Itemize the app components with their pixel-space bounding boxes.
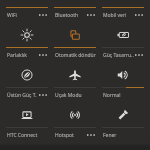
staticText: Bluetooth [55, 12, 79, 19]
button[interactable]: Normal [102, 87, 144, 127]
button[interactable]: Otomatik döndür [54, 47, 96, 87]
staticText: Mobil veri [103, 12, 127, 19]
staticText: WiFi [7, 12, 17, 19]
staticText: Parlaklık [7, 52, 27, 59]
staticText: Normal [103, 92, 121, 99]
button[interactable]: WiFi [6, 7, 48, 47]
staticText: Hotspot [55, 132, 74, 139]
button[interactable]: Uçak Modu [54, 87, 96, 127]
staticText: HTC Connect [7, 132, 38, 139]
button[interactable]: Fener [102, 127, 144, 150]
button[interactable]: Üstün Güç T. [6, 87, 48, 127]
button[interactable]: Mobil veri [102, 7, 144, 47]
staticText: Güç Tasarru.. [103, 52, 134, 59]
staticText: Fener [103, 132, 117, 139]
button[interactable]: Güç Tasarru.. [102, 47, 144, 87]
staticText: Uçak Modu [55, 92, 82, 99]
button[interactable]: Bluetooth [54, 7, 96, 47]
button[interactable]: HTC Connect [6, 127, 48, 150]
button[interactable]: Hotspot [54, 127, 96, 150]
staticText: Otomatik döndür [55, 52, 96, 59]
staticText: Üstün Güç T. [7, 92, 37, 99]
button[interactable]: Parlaklık [6, 47, 48, 87]
